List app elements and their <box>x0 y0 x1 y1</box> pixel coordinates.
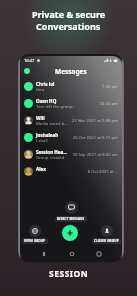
staticText: Alex <box>36 166 46 172</box>
staticText: DIRECT MESSAGE <box>57 217 85 221</box>
button[interactable]: Alex <box>20 163 122 180</box>
staticText: 10:47 <box>24 58 35 63</box>
staticText: Conversations <box>36 20 101 32</box>
staticText: I shall <box>36 138 48 144</box>
staticText: Joshaleah <box>36 132 59 138</box>
staticText: Oxen HQ <box>36 98 57 104</box>
staticText: 8 Oct 2021 at ... <box>87 169 118 175</box>
staticText: Group created <box>36 155 65 161</box>
button[interactable]: Home <box>67 249 76 258</box>
staticText: Session Hea... <box>36 149 68 155</box>
button[interactable]: Oxen HQ <box>20 95 122 112</box>
staticText: Messages <box>55 67 87 76</box>
staticText: 23 Nov 2021 at 9:46 pm <box>71 118 118 124</box>
staticText: Tom left the group. <box>36 104 74 110</box>
button[interactable]: Chris lol <box>20 78 122 95</box>
button[interactable]: Session Hea... <box>20 146 122 163</box>
button[interactable]: Joshaleah <box>20 129 122 146</box>
staticText: 1:30 pm <box>102 84 118 90</box>
staticText: CLOSED GROUP <box>94 239 119 243</box>
staticText: Chris lol <box>36 81 55 87</box>
staticText: Media saved by Will. <box>36 121 69 127</box>
button[interactable]: OPEN GROUP <box>22 225 48 244</box>
staticText: Private & secure <box>32 8 106 20</box>
staticText: 30 Sep 2021 at 8:43 am <box>72 152 118 158</box>
button[interactable]: New conversation <box>62 225 78 241</box>
button[interactable]: Profile <box>24 68 30 74</box>
staticText: Will <box>36 115 45 121</box>
staticText: 26 Oct 2021 at 5:11 pm <box>72 135 118 141</box>
staticText: OPEN GROUP <box>24 239 46 243</box>
button[interactable]: Direct message <box>65 201 78 214</box>
button[interactable]: Will <box>20 112 122 129</box>
button[interactable]: Back <box>39 249 48 258</box>
staticText: thru <box>36 87 45 93</box>
button[interactable]: CLOSED GROUP <box>92 225 121 244</box>
staticText: 12:32 pm <box>99 101 118 107</box>
button[interactable]: Recents <box>94 249 103 258</box>
staticText: SESSION <box>49 268 89 280</box>
